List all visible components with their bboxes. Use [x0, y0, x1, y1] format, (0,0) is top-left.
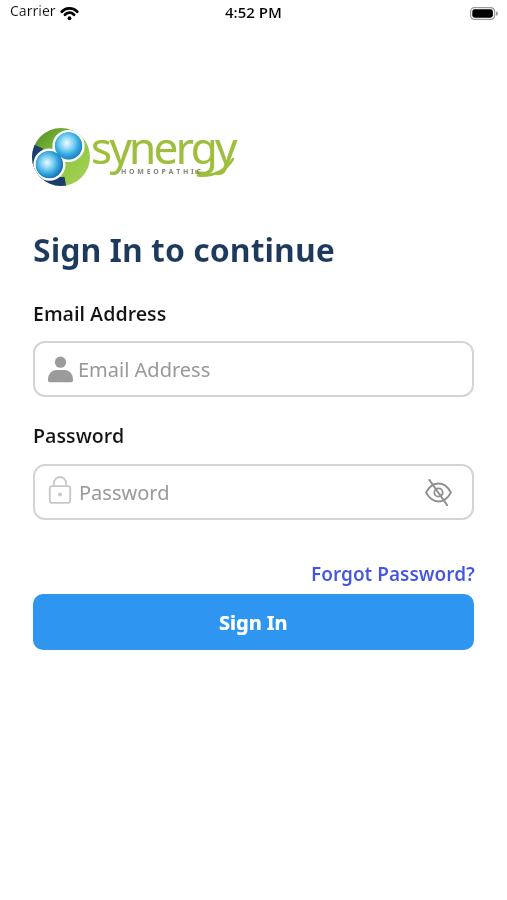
staticText: Sign In: [219, 609, 288, 636]
staticText: Email Address: [33, 300, 167, 327]
staticText: Password: [33, 422, 125, 449]
staticText: Carrier: [10, 1, 56, 20]
button[interactable]: Forgot Password?: [311, 561, 475, 587]
staticText: H O M E O P A T H I C: [121, 167, 202, 177]
staticText: 4:52 PM: [225, 2, 282, 22]
button[interactable]: Password: [33, 464, 474, 520]
button[interactable]: Sign In: [33, 594, 474, 650]
button[interactable]: Email Address: [33, 341, 474, 397]
staticText: Forgot Password?: [311, 561, 475, 587]
button[interactable]: [418, 472, 458, 512]
staticText: Password: [79, 479, 170, 506]
staticText: synergy: [91, 117, 235, 177]
staticText: Sign In to continue: [33, 228, 335, 272]
staticText: Email Address: [78, 356, 211, 383]
